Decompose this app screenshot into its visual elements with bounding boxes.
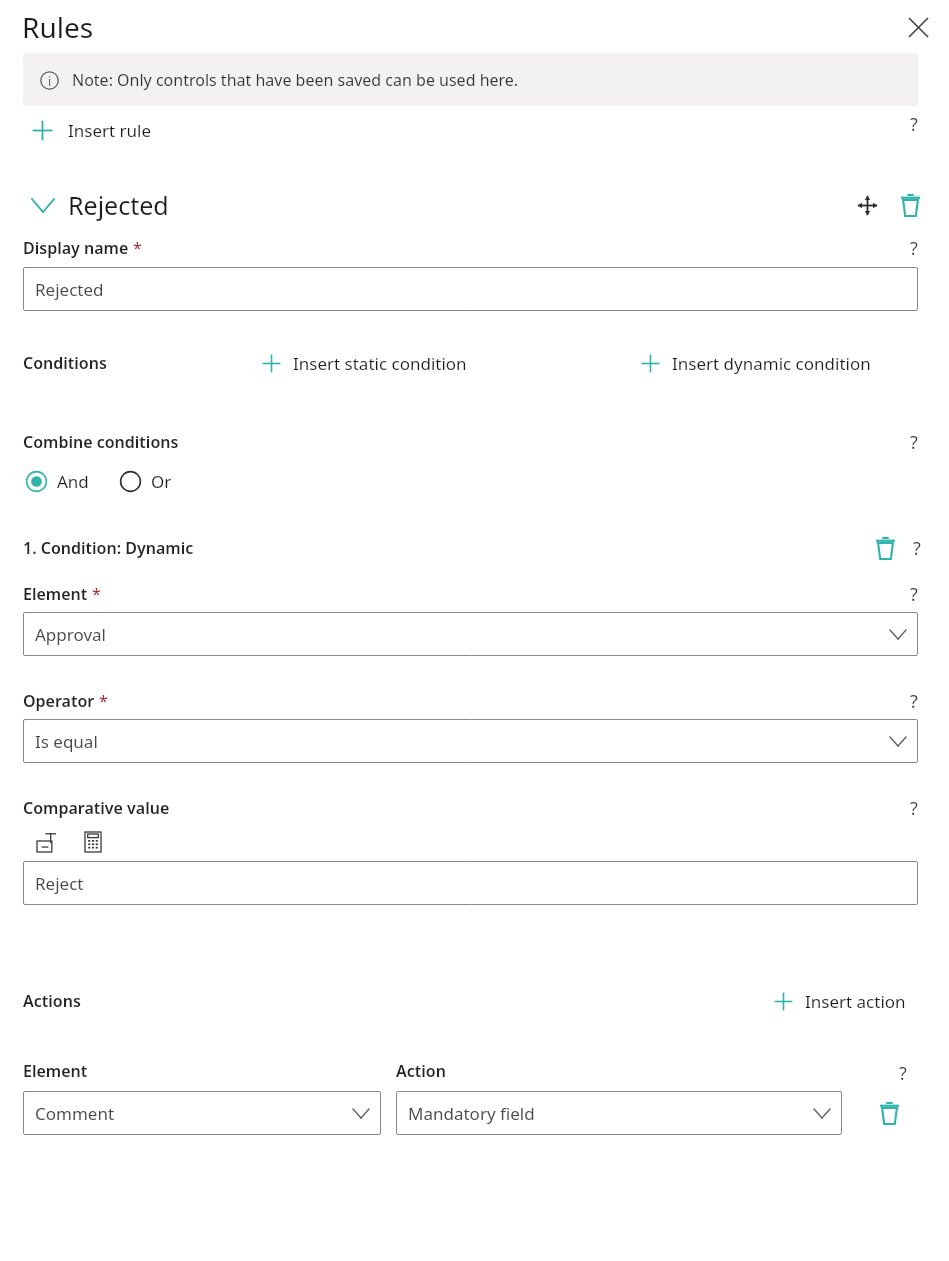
staticText: Is equal [35,730,98,753]
button[interactable]: Or [119,470,172,493]
button[interactable]: Close [901,10,935,44]
staticText: i [48,73,52,89]
button[interactable]: Insert rule [32,119,152,142]
staticText: Display name [23,237,129,259]
staticText: * [99,690,108,712]
button[interactable]: Help [901,795,927,821]
staticText: And [57,470,89,493]
staticText: ? [910,112,918,137]
button[interactable]: Help [890,1060,916,1086]
button[interactable]: Delete rule [895,190,925,220]
button[interactable]: Insert action [774,990,906,1013]
button[interactable]: Rejected [32,188,169,222]
button[interactable]: Help [901,235,927,261]
staticText: Mandatory field [408,1102,535,1125]
button[interactable]: Help [901,581,927,607]
staticText: Conditions [23,352,107,374]
staticText: Rejected [68,188,169,222]
button[interactable]: Formula [80,829,106,855]
button[interactable]: Move [852,190,882,220]
staticText: Or [151,470,172,493]
button[interactable]: Delete action [874,1098,904,1128]
staticText: ? [910,236,918,261]
button[interactable]: Help [901,111,927,137]
button[interactable]: Help [901,688,927,714]
staticText: ? [899,1061,907,1086]
staticText: Insert static condition [293,352,467,375]
button[interactable]: Rejected [23,267,918,311]
button[interactable]: Insert dynamic condition [641,352,871,375]
staticText: Insert dynamic condition [672,352,871,375]
staticText: ? [910,796,918,821]
staticText: * [133,237,142,259]
button[interactable]: Delete condition [870,533,900,563]
staticText: Rejected [35,278,104,301]
button[interactable]: Reject [23,861,918,905]
button[interactable]: Is equal [23,719,918,763]
staticText: * [92,583,101,605]
staticText: Reject [35,872,84,895]
staticText: ? [913,536,921,561]
button[interactable]: Comment [23,1091,381,1135]
staticText: ? [910,582,918,607]
staticText: Element [23,1060,88,1082]
staticText: Approval [35,623,106,646]
staticText: Operator [23,690,95,712]
staticText: Insert action [805,990,906,1013]
button[interactable]: Help [901,429,927,455]
button[interactable]: Help [904,535,930,561]
staticText: Note: Only controls that have been saved… [72,69,519,91]
staticText: Actions [23,990,81,1012]
staticText: ? [910,689,918,714]
button[interactable]: And [25,470,89,493]
staticText: Element [23,583,88,605]
staticText: ? [910,430,918,455]
button[interactable]: Text value [33,829,59,855]
button[interactable]: Mandatory field [396,1091,842,1135]
staticText: Insert rule [68,119,152,142]
staticText: Comment [35,1102,115,1125]
staticText: Comparative value [23,797,170,819]
staticText: Action [396,1060,446,1082]
staticText: Rules [22,8,94,46]
staticText: Combine conditions [23,431,179,453]
button[interactable]: Approval [23,612,918,656]
staticText: 1. Condition: Dynamic [23,537,194,559]
button[interactable]: Insert static condition [262,352,467,375]
